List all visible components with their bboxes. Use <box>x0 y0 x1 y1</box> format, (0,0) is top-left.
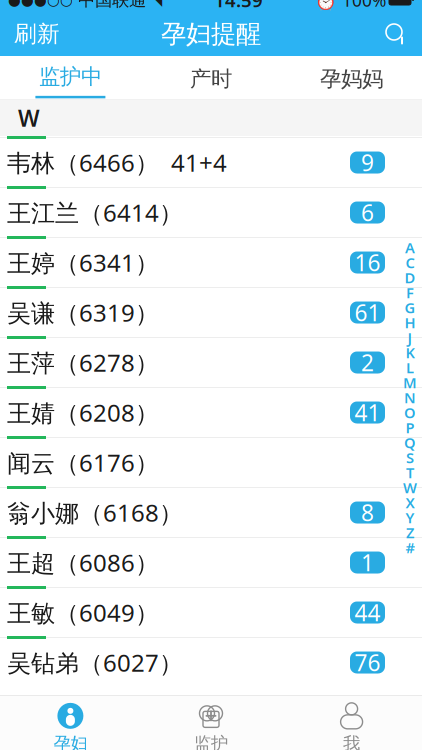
button[interactable]: 监护中 <box>0 56 141 100</box>
button[interactable]: 产时 <box>141 56 281 100</box>
staticText: 吴谦（6319） <box>7 297 159 328</box>
staticText: C <box>405 253 414 272</box>
button[interactable]: 我 <box>281 695 422 750</box>
staticText: Z <box>406 523 414 542</box>
staticText: X <box>405 493 414 512</box>
staticText: P <box>405 418 414 437</box>
button[interactable]: 吴钻弟（6027） <box>0 636 422 686</box>
staticText: ●●●○○ <box>8 0 73 8</box>
staticText: D <box>404 268 415 287</box>
staticText: 6 <box>361 197 374 227</box>
staticText: 王超（6086） <box>7 547 159 578</box>
staticText: W <box>18 103 40 133</box>
staticText: L <box>406 358 414 377</box>
button[interactable]: 王婷（6341） <box>0 236 422 286</box>
staticText: 王江兰（6414） <box>7 197 183 228</box>
staticText: W <box>403 478 417 497</box>
staticText: 王萍（6278） <box>7 347 159 378</box>
staticText: ◥ <box>151 0 162 8</box>
staticText: Q <box>404 433 416 452</box>
button[interactable]: 王萍（6278） <box>0 336 422 386</box>
staticText: 翁小娜（6168） <box>7 497 183 528</box>
staticText: ⏰ 100% <box>315 0 386 11</box>
staticText: J <box>407 328 412 347</box>
button[interactable]: 监护 <box>141 695 281 750</box>
staticText: M <box>403 373 417 392</box>
button[interactable]: 王超（6086） <box>0 536 422 586</box>
button[interactable]: 刷新 <box>4 12 70 56</box>
staticText: 1 <box>361 547 374 577</box>
staticText: S <box>406 448 414 467</box>
staticText: N <box>404 388 416 407</box>
staticText: 韦林（6466） 41+4 <box>7 147 227 178</box>
staticText: Y <box>405 508 414 527</box>
button[interactable]: 闻云（6176） <box>0 436 422 486</box>
button[interactable]: 孕妇 <box>0 695 141 750</box>
button[interactable]: 王婧（6208） <box>0 386 422 436</box>
staticText: 闻云（6176） <box>7 447 159 478</box>
staticText: 76 <box>354 647 380 677</box>
button[interactable]: 吴谦（6319） <box>0 286 422 336</box>
staticText: 吴钻弟（6027） <box>7 647 183 678</box>
staticText: T <box>406 463 414 482</box>
staticText: 孕妈妈 <box>320 66 383 92</box>
staticText: 王婧（6208） <box>7 397 159 428</box>
staticText: 孕妇提醒 <box>161 18 261 49</box>
button[interactable]: 王敏（6049） <box>0 586 422 636</box>
staticText: 16 <box>354 247 380 277</box>
staticText: 监护中 <box>39 64 102 90</box>
staticText: 44 <box>354 597 380 627</box>
staticText: O <box>404 403 416 422</box>
staticText: 监护 <box>194 733 228 750</box>
staticText: 9 <box>361 147 374 177</box>
button[interactable]: 翁小娜（6168） <box>0 486 422 536</box>
staticText: F <box>406 283 414 302</box>
button[interactable]: 搜索 <box>374 12 418 56</box>
staticText: 产时 <box>190 66 232 92</box>
staticText: 刷新 <box>14 20 60 48</box>
staticText: 我 <box>343 733 360 750</box>
staticText: 41 <box>354 397 380 427</box>
staticText: G <box>404 298 415 317</box>
staticText: H <box>404 313 415 332</box>
staticText: 中国联通 <box>73 0 151 11</box>
staticText: 王敏（6049） <box>7 597 159 628</box>
staticText: 孕妇 <box>53 733 87 750</box>
button[interactable]: 韦林（6466） 41+4 <box>0 136 422 186</box>
button[interactable]: 孕妈妈 <box>281 56 422 100</box>
button[interactable]: 王江兰（6414） <box>0 186 422 236</box>
staticText: 14:59 <box>214 0 263 12</box>
staticText: 2 <box>361 347 374 377</box>
staticText: 8 <box>361 497 374 527</box>
staticText: K <box>405 343 414 362</box>
staticText: # <box>405 538 414 557</box>
staticText: 61 <box>354 297 380 327</box>
staticText: 王婷（6341） <box>7 247 159 278</box>
staticText: A <box>405 238 415 257</box>
